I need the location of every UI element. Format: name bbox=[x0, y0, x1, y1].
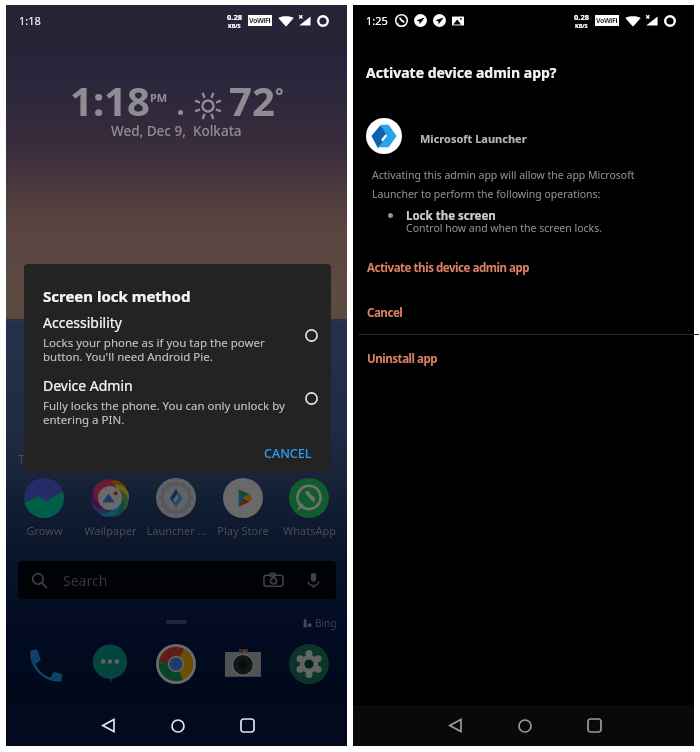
button[interactable]: Settings bbox=[286, 641, 332, 687]
button[interactable]: Lens camera search bbox=[264, 571, 283, 590]
button[interactable]: Play Store bbox=[210, 478, 276, 538]
staticText: CANCEL bbox=[264, 445, 312, 462]
staticText: Activate device admin app? bbox=[366, 63, 557, 82]
staticText: KB/S bbox=[575, 22, 588, 29]
staticText: 0.28 bbox=[574, 12, 589, 22]
staticText: Locks your phone as if you tap the power… bbox=[43, 335, 265, 364]
staticText: Activate this device admin app bbox=[367, 260, 530, 276]
staticText: Search bbox=[63, 571, 108, 590]
staticText: Screen lock method bbox=[43, 286, 191, 306]
staticText: Uninstall app bbox=[367, 351, 438, 367]
button[interactable]: Home bbox=[154, 705, 202, 746]
staticText: Activating this admin app will allow the… bbox=[372, 168, 635, 201]
button[interactable]: Voice search bbox=[304, 571, 323, 590]
button[interactable]: Camera bbox=[220, 641, 266, 687]
button[interactable]: Cancel bbox=[353, 300, 694, 326]
button[interactable]: Device Admin bbox=[24, 371, 331, 429]
staticText: Bing bbox=[315, 616, 337, 630]
button[interactable]: CANCEL bbox=[258, 440, 318, 466]
button[interactable]: Search bbox=[18, 561, 336, 599]
button[interactable]: Chrome bbox=[153, 641, 199, 687]
staticText: Device Admin bbox=[43, 376, 133, 395]
button[interactable]: Phone bbox=[21, 641, 67, 687]
button[interactable]: WhatsApp bbox=[276, 478, 342, 538]
button[interactable]: Back bbox=[431, 705, 479, 746]
staticText: 1:25 bbox=[366, 13, 388, 28]
staticText: 72 bbox=[229, 73, 275, 127]
staticText: Wallpaper bbox=[84, 523, 137, 538]
staticText: 1:18 bbox=[70, 73, 150, 127]
staticText: Groww bbox=[26, 523, 63, 538]
button[interactable]: Launcher ... bbox=[143, 478, 209, 538]
button[interactable]: Back bbox=[84, 705, 132, 746]
button[interactable]: Groww bbox=[11, 478, 77, 538]
staticText: 0.28 bbox=[227, 12, 242, 22]
button[interactable]: Messages bbox=[87, 641, 133, 687]
button[interactable]: Accessibility bbox=[24, 308, 331, 366]
button[interactable]: Uninstall app bbox=[353, 346, 694, 372]
button[interactable]: Activate this device admin app bbox=[353, 255, 694, 281]
staticText: Wed, Dec 9, Kolkata bbox=[111, 122, 242, 140]
button[interactable]: Home bbox=[501, 705, 549, 746]
staticText: Microsoft Launcher bbox=[420, 131, 527, 146]
staticText: Today bbox=[18, 451, 52, 467]
staticText: Accessibility bbox=[43, 313, 122, 332]
button[interactable]: Wallpaper bbox=[77, 478, 143, 538]
staticText: KB/S bbox=[228, 22, 241, 29]
staticText: Fully locks the phone. You can only unlo… bbox=[43, 398, 285, 427]
staticText: 1:18 bbox=[19, 13, 41, 28]
staticText: VoWiFi bbox=[249, 16, 271, 26]
staticText: Cancel bbox=[367, 305, 403, 321]
staticText: VoWiFi bbox=[596, 16, 618, 26]
button[interactable]: Recent apps bbox=[570, 705, 618, 746]
staticText: Launcher ... bbox=[146, 523, 207, 538]
staticText: Control how and when the screen locks. bbox=[406, 221, 602, 235]
staticText: PM bbox=[150, 90, 168, 105]
staticText: Lock the screen bbox=[406, 208, 496, 224]
staticText: Play Store bbox=[217, 523, 269, 538]
staticText: WhatsApp bbox=[283, 523, 336, 538]
button[interactable]: Recent apps bbox=[223, 705, 271, 746]
staticText: ° bbox=[275, 82, 284, 109]
